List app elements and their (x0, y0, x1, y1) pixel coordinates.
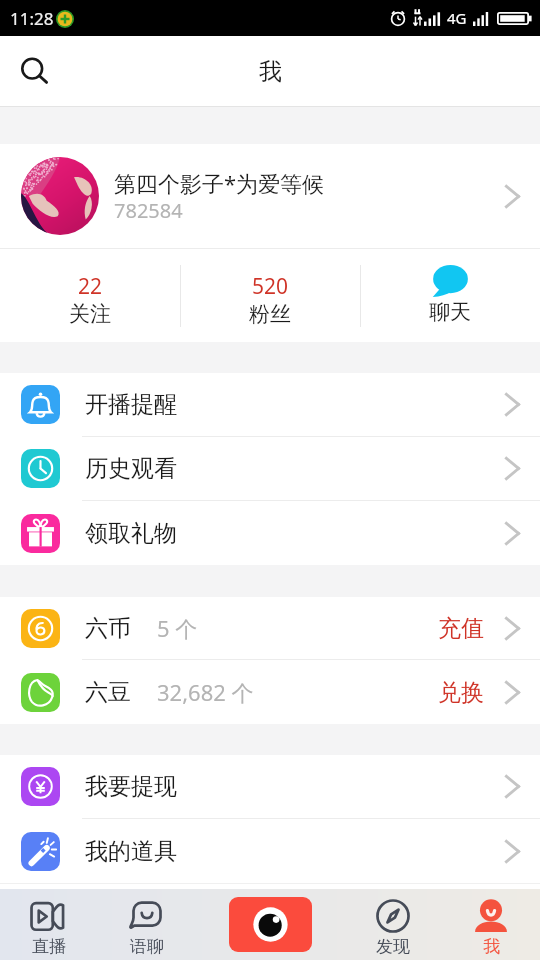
staticText: 粉丝 (249, 301, 291, 327)
staticText: 历史观看 (85, 454, 177, 483)
staticText: 直播 (32, 936, 66, 957)
staticText: 语聊 (130, 936, 164, 957)
button[interactable]: 领取礼物 (0, 501, 540, 565)
staticText: 关注 (69, 301, 111, 327)
button[interactable]: 我的道具 (0, 819, 540, 883)
button[interactable]: 第四个影子*为爱等候 (0, 144, 540, 248)
button[interactable]: 发现 (344, 889, 442, 960)
staticText: 520 (252, 272, 289, 301)
staticText: 充值 (438, 614, 484, 643)
staticText: 我 (259, 57, 282, 86)
staticText: 4G (447, 8, 467, 28)
staticText: 我要提现 (85, 772, 177, 801)
staticText: 聊天 (429, 299, 471, 325)
staticText: 发现 (376, 936, 410, 957)
staticText: 第四个影子*为爱等候 (114, 168, 325, 198)
button[interactable]: 直播 (0, 889, 98, 960)
staticText: 兑换 (438, 678, 484, 707)
button[interactable]: 聊天 (360, 249, 540, 342)
button[interactable]: 我要提现 (0, 755, 540, 818)
staticText: 11:28 (10, 7, 54, 30)
button[interactable]: Search (6, 43, 62, 99)
staticText: 开播提醒 (85, 390, 177, 419)
staticText: 六币 (85, 614, 131, 643)
button[interactable]: 开播提醒 (0, 373, 540, 436)
button[interactable]: 22 (0, 249, 180, 342)
button[interactable]: Go live (229, 897, 312, 952)
button[interactable]: 520 (180, 249, 360, 342)
staticText: 领取礼物 (85, 519, 177, 548)
button[interactable]: 六币 (0, 597, 540, 659)
staticText: 六豆 (85, 678, 131, 707)
staticText: 5 个 (157, 613, 198, 643)
staticText: 32,682 个 (157, 677, 254, 707)
button[interactable]: 语聊 (98, 889, 196, 960)
staticText: 我的道具 (85, 837, 177, 866)
button[interactable]: 我 (442, 889, 540, 960)
button[interactable]: 历史观看 (0, 437, 540, 500)
staticText: 782584 (114, 197, 183, 224)
staticText: 22 (78, 272, 103, 301)
button[interactable]: 六豆 (0, 660, 540, 724)
staticText: 我 (483, 936, 500, 957)
